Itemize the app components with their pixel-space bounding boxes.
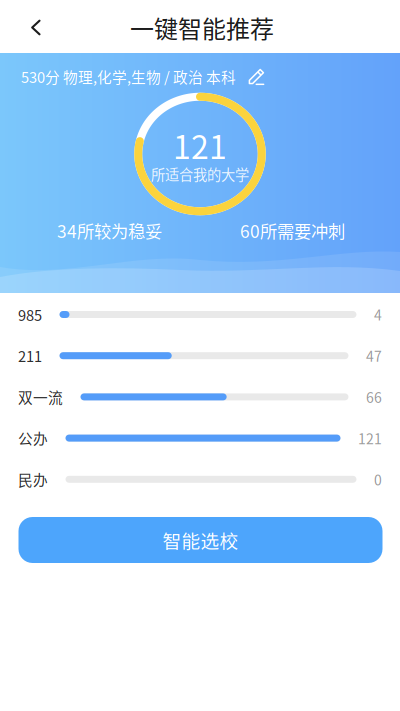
staticText: 121 [358, 428, 382, 448]
staticText: 智能选校 [162, 526, 238, 553]
staticText: 所适合我的大学 [151, 164, 249, 184]
button[interactable]: 智能选校 [18, 517, 382, 563]
staticText: 0 [374, 469, 382, 489]
staticText: 121 [173, 122, 227, 168]
staticText: 985 [18, 304, 42, 325]
staticText: 一键智能推荐 [130, 10, 274, 45]
staticText: 47 [366, 346, 382, 366]
staticText: 双一流 [18, 386, 63, 407]
button[interactable]: Edit profile [248, 68, 265, 85]
button[interactable]: Back [14, 5, 58, 49]
staticText: 民办 [18, 469, 48, 490]
staticText: 公办 [18, 427, 48, 449]
staticText: 4 [374, 304, 382, 325]
staticText: 211 [18, 345, 42, 366]
staticText: 60所需要冲刺 [240, 218, 345, 243]
staticText: 66 [366, 387, 382, 407]
staticText: 530分 物理,化学,生物 / 政治 本科 [21, 66, 236, 87]
staticText: 34所较为稳妥 [57, 218, 162, 243]
